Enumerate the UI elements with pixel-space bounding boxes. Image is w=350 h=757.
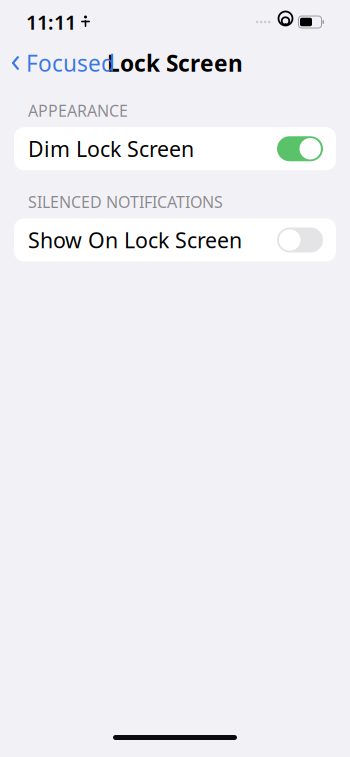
staticText: Focused xyxy=(26,48,115,78)
staticText: Show On Lock Screen xyxy=(28,226,242,254)
button[interactable]: Dim Lock Screen xyxy=(14,127,336,170)
staticText: 11:11 xyxy=(26,9,76,35)
staticText: SILENCED NOTIFICATIONS xyxy=(28,191,223,212)
button[interactable]: Focused xyxy=(2,42,123,84)
button[interactable]: Show On Lock Screen xyxy=(14,218,336,261)
staticText: APPEARANCE xyxy=(28,100,128,121)
staticText: Lock Screen xyxy=(107,48,243,78)
staticText: Dim Lock Screen xyxy=(28,135,194,163)
